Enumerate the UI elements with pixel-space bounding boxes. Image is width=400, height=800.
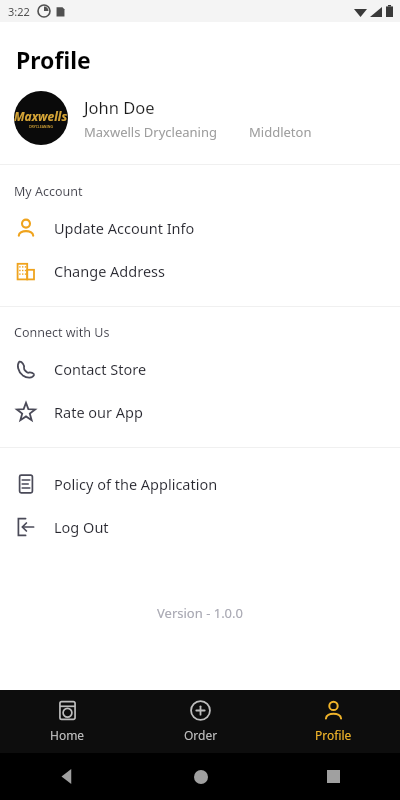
staticText: DRYCLEANING [29,124,53,129]
button[interactable]: Maxwells [0,91,400,145]
staticText: Rate our App [54,402,143,422]
staticText: Update Account Info [54,218,195,238]
staticText: Order [184,727,218,743]
button[interactable]: Log Out [0,505,400,548]
staticText: Profile [16,44,91,75]
button[interactable]: Contact Store [0,347,400,390]
other: Back [60,769,75,784]
button[interactable]: Order [134,690,267,753]
button[interactable]: Home [0,690,134,753]
button[interactable]: Update Account Info [0,206,400,249]
staticText: Profile [315,727,352,743]
staticText: Log Out [54,517,109,537]
staticText: My Account [14,183,83,200]
button[interactable]: Policy of the Application [0,462,400,505]
staticText: Maxwells Drycleaning [84,123,217,141]
button[interactable]: Profile [267,690,400,753]
staticText: Policy of the Application [54,474,218,494]
button[interactable]: Rate our App [0,390,400,433]
staticText: Home [50,727,85,743]
staticText: Middleton [249,123,312,141]
button[interactable]: Change Address [0,249,400,292]
staticText: Change Address [54,261,165,281]
staticText: 3:22 [8,4,30,19]
staticText: Version - 1.0.0 [0,604,400,622]
staticText: John Doe [84,96,155,118]
staticText: Contact Store [54,359,147,379]
other: Home [194,770,208,784]
staticText: Connect with Us [14,324,110,341]
staticText: Maxwells [14,108,68,124]
